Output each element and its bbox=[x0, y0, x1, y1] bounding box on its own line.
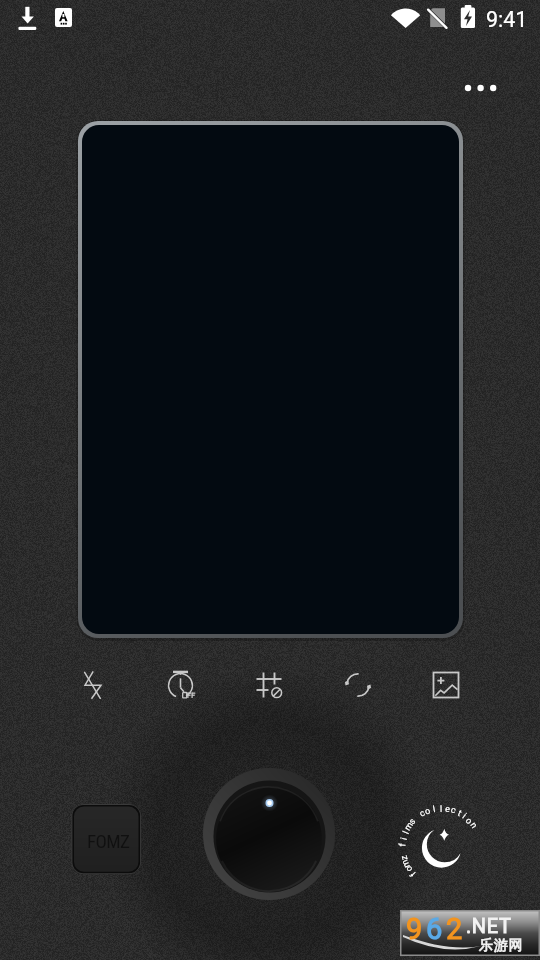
button[interactable]: Timer off bbox=[153, 657, 209, 713]
button[interactable]: Shutter bbox=[189, 754, 349, 914]
staticText: o bbox=[403, 863, 415, 874]
staticText: e bbox=[444, 804, 451, 815]
staticText: 9:41 bbox=[486, 7, 528, 32]
staticText: l bbox=[440, 804, 443, 815]
staticText: i bbox=[460, 811, 469, 822]
button[interactable]: Flash off bbox=[65, 657, 121, 713]
staticText: l bbox=[432, 804, 437, 815]
staticText: f bbox=[408, 868, 418, 879]
staticText: f bbox=[397, 842, 409, 847]
button[interactable]: Grid off bbox=[241, 657, 297, 713]
staticText: 乐游网 bbox=[478, 937, 523, 955]
staticText: 2 bbox=[446, 912, 463, 946]
button[interactable]: Gallery bbox=[418, 657, 474, 713]
staticText: 6 bbox=[426, 912, 443, 946]
staticText: t bbox=[456, 808, 463, 819]
staticText: o bbox=[463, 815, 475, 827]
button[interactable]: More options bbox=[450, 63, 506, 111]
staticText: c bbox=[449, 804, 458, 816]
staticText: m bbox=[402, 820, 416, 833]
staticText: FOMZ bbox=[87, 830, 130, 852]
staticText: l bbox=[401, 829, 412, 836]
staticText: m bbox=[399, 858, 413, 869]
staticText: c bbox=[418, 807, 427, 819]
staticText: o bbox=[423, 805, 433, 818]
staticText: i bbox=[399, 836, 410, 841]
button[interactable]: Switch camera bbox=[330, 657, 386, 713]
staticText: 9 bbox=[406, 912, 423, 946]
staticText: s bbox=[407, 816, 418, 827]
staticText: n bbox=[467, 820, 479, 831]
staticText: z bbox=[398, 854, 410, 861]
staticText: .NET bbox=[466, 914, 512, 937]
button[interactable]: fomz films collection bbox=[388, 789, 494, 895]
button[interactable]: FOMZ bbox=[66, 798, 148, 882]
